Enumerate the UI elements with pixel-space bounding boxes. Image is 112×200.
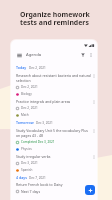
button[interactable]: Task options	[91, 99, 96, 104]
button[interactable]: More options	[87, 51, 95, 59]
staticText: Study irregular verbs	[16, 154, 51, 159]
staticText: 4 days	[16, 175, 27, 180]
staticText: Physics	[21, 147, 32, 151]
button[interactable]: 4 days	[16, 175, 96, 180]
button[interactable]: Today	[16, 65, 96, 70]
staticText: Biology	[21, 92, 32, 96]
staticText: Spanish	[21, 168, 33, 172]
staticText: Organize homework tests and reminders	[20, 10, 90, 27]
button[interactable]: Open navigation menu	[15, 51, 23, 59]
staticText: Completed Dec 3, 2021	[21, 140, 55, 144]
button[interactable]: Task options	[91, 154, 96, 159]
button[interactable]: Practice integrals and plain areas	[16, 99, 96, 117]
staticText: Next 7 days	[21, 189, 41, 194]
staticText: Return French book to Daisy	[16, 182, 63, 187]
staticText: Dec 3, 2021	[36, 121, 53, 125]
staticText: Dec 2, 2021	[21, 85, 38, 89]
staticText: Practice integrals and plain areas	[16, 99, 71, 104]
staticText: Dec 2, 2021	[21, 106, 38, 110]
staticText: Tomorrow	[16, 120, 34, 125]
staticText: Dec 7, 2021	[29, 176, 46, 180]
staticText: Dec 3, 2021	[21, 161, 38, 165]
button[interactable]: Create task	[85, 185, 95, 195]
staticText: Study Vocabulary Unit 5 the vocabulary P…	[16, 128, 91, 138]
button[interactable]: Study Vocabulary Unit 5 the vocabulary P…	[16, 128, 96, 151]
staticText: Math	[21, 113, 29, 117]
staticText: Research about resistant bacteria and na…	[16, 73, 91, 83]
button[interactable]: Task options	[91, 128, 96, 133]
button[interactable]: Research about resistant bacteria and na…	[16, 73, 96, 96]
button[interactable]: Study irregular verbs	[16, 154, 96, 172]
staticText: Today	[16, 65, 27, 70]
button[interactable]: Task options	[91, 73, 96, 78]
staticText: Dec 2, 2021	[29, 66, 46, 70]
staticText: Agenda	[26, 52, 42, 58]
button[interactable]: Filter	[79, 51, 87, 59]
button[interactable]: Tomorrow	[16, 120, 96, 125]
